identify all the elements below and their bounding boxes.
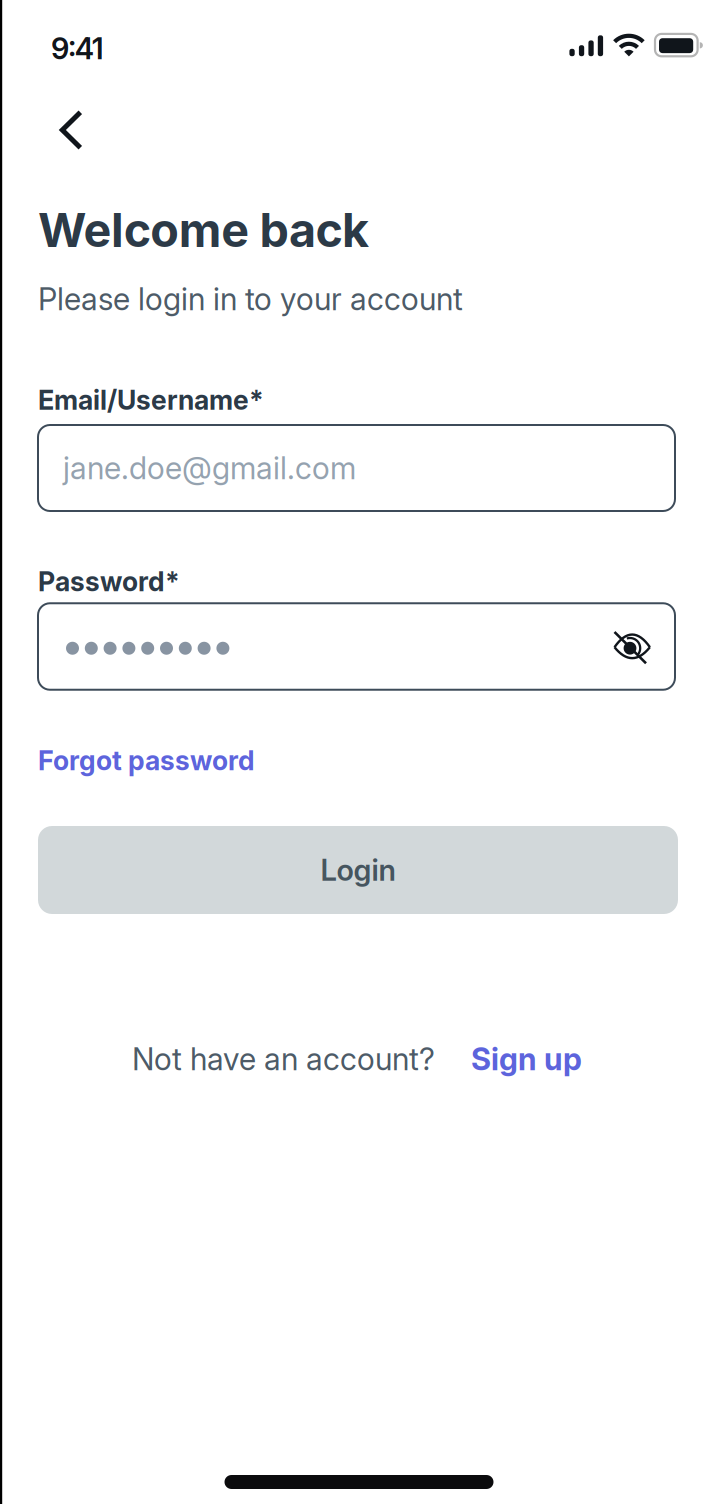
staticText: Login: [320, 853, 395, 887]
staticText: jane.doe@gmail.com: [63, 450, 356, 486]
staticText: Password*: [38, 566, 180, 597]
staticText: Not have an account?: [132, 1041, 435, 1077]
button[interactable]: [46, 106, 94, 154]
button[interactable]: jane.doe@gmail.com: [38, 425, 675, 511]
staticText: 9:41: [51, 31, 104, 66]
button[interactable]: Sign up: [471, 1041, 582, 1077]
staticText: Please login in to your account: [38, 281, 463, 317]
button[interactable]: [38, 603, 675, 690]
staticText: Forgot password: [38, 745, 255, 776]
staticText: Email/Username*: [38, 384, 264, 416]
staticText: Sign up: [471, 1041, 582, 1077]
button[interactable]: [608, 624, 656, 672]
button[interactable]: Login: [38, 826, 678, 914]
button[interactable]: Forgot password: [38, 742, 398, 778]
staticText: Welcome back: [38, 202, 369, 258]
